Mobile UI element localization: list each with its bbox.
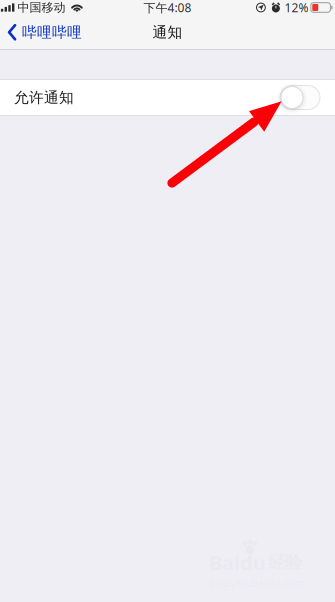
staticText: 哔哩哔哩 — [22, 23, 82, 41]
button[interactable]: 允许通知 — [280, 85, 320, 109]
staticText: 12% — [284, 0, 308, 15]
button[interactable]: 哔哩哔哩 — [0, 15, 88, 49]
staticText: 下午4:08 — [143, 0, 191, 15]
staticText: 允许通知 — [14, 88, 74, 106]
staticText: 通知 — [152, 23, 182, 41]
staticText: 中国移动 — [17, 0, 65, 15]
